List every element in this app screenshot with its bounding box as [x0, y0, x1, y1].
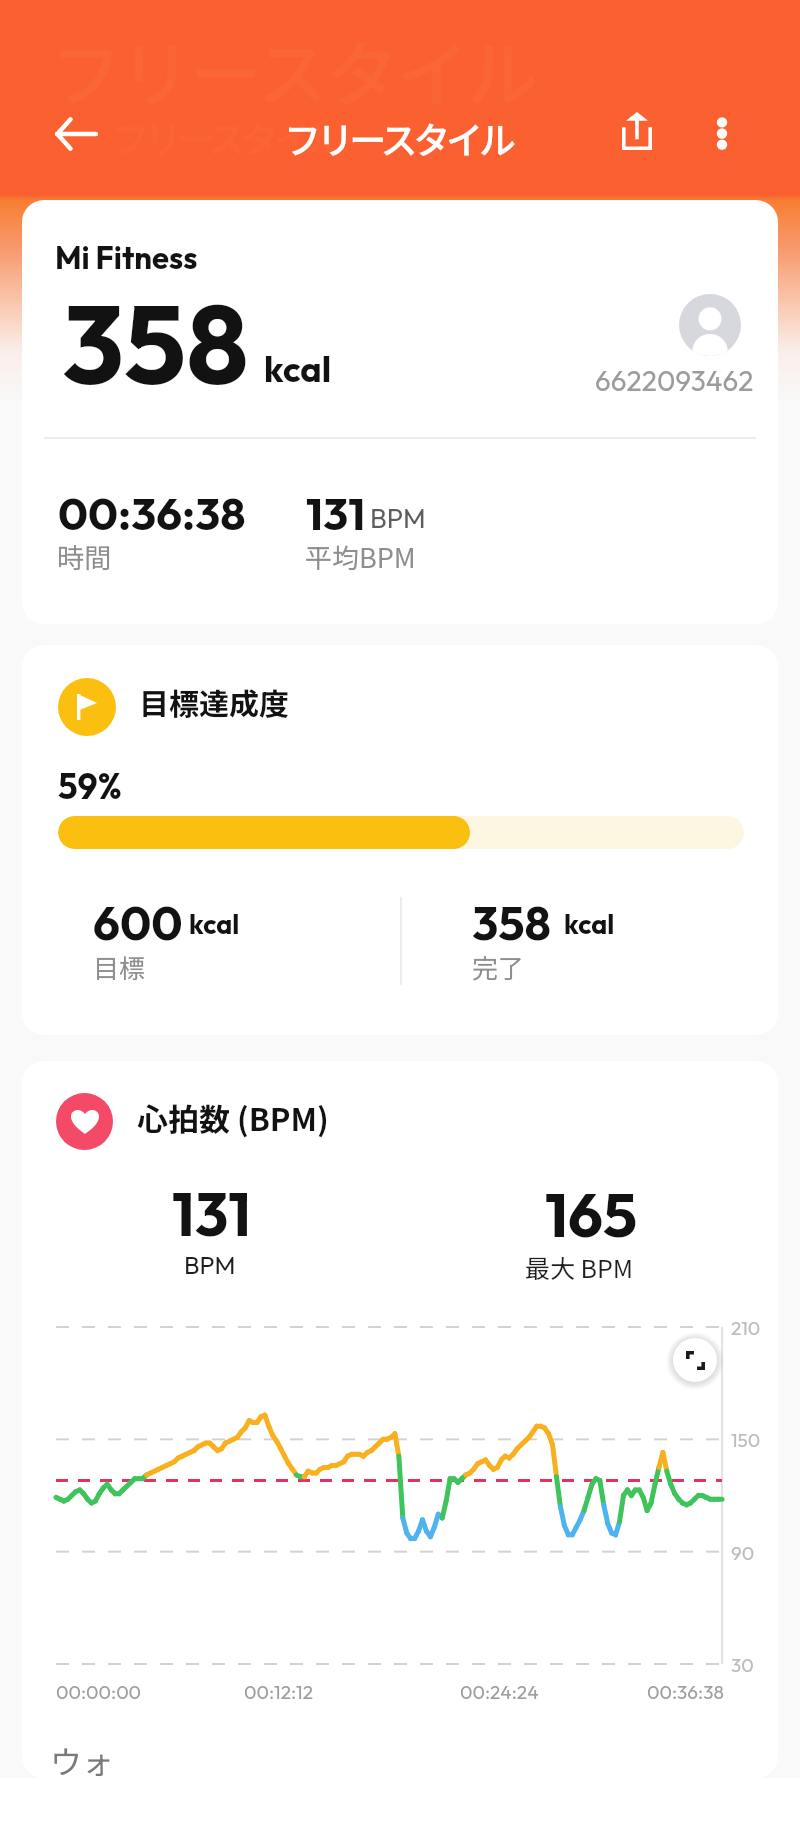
- staticText: kcal: [264, 346, 332, 391]
- staticText: kcal: [564, 907, 615, 941]
- staticText: BPM: [184, 1249, 236, 1281]
- staticText: フリースタイル: [50, 17, 537, 121]
- staticText: 平均BPM: [305, 537, 416, 576]
- staticText: 210: [731, 1316, 761, 1340]
- staticText: 131: [172, 1176, 251, 1252]
- button[interactable]: Back: [42, 100, 110, 168]
- staticText: 完了: [472, 948, 525, 986]
- button[interactable]: More options: [689, 101, 755, 167]
- button[interactable]: Share: [604, 98, 670, 164]
- staticText: 59%: [58, 764, 122, 808]
- staticText: 00:36:38: [58, 485, 246, 542]
- staticText: 目標達成度: [139, 680, 289, 723]
- staticText: 心拍数 (BPM): [137, 1095, 329, 1140]
- staticText: 131: [306, 485, 366, 542]
- staticText: BPM: [370, 501, 426, 535]
- staticText: 00:24:24: [460, 1680, 539, 1704]
- staticText: 90: [731, 1541, 755, 1565]
- staticText: 最大 BPM: [525, 1249, 634, 1285]
- staticText: 358: [62, 273, 249, 413]
- staticText: 30: [731, 1653, 754, 1677]
- staticText: ウォ: [50, 1737, 115, 1778]
- staticText: 165: [545, 1176, 638, 1253]
- staticText: 358: [472, 893, 552, 952]
- staticText: kcal: [189, 907, 240, 941]
- staticText: 00:36:38: [647, 1680, 724, 1704]
- staticText: フリースタイル: [284, 111, 512, 165]
- staticText: 600: [93, 893, 183, 952]
- staticText: 目標: [93, 948, 146, 986]
- staticText: 00:00:00: [56, 1680, 142, 1704]
- staticText: Mi Fitness: [55, 238, 198, 277]
- staticText: 時間: [57, 537, 111, 576]
- staticText: 150: [731, 1428, 761, 1452]
- staticText: 00:12:12: [244, 1680, 313, 1704]
- staticText: フリースタイル: [112, 110, 340, 164]
- staticText: 6622093462: [595, 363, 754, 398]
- button[interactable]: Expand chart: [673, 1338, 717, 1382]
